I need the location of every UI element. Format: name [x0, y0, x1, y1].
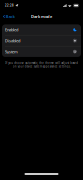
staticText: Disabled	[5, 38, 20, 43]
button[interactable]: Back	[0, 12, 17, 21]
staticText: If you choose automatic, the theme will …	[5, 61, 78, 68]
staticText: Back	[6, 14, 15, 19]
button[interactable]: Enabled	[2, 24, 81, 35]
button[interactable]: System	[2, 46, 81, 57]
button[interactable]: Disabled	[2, 35, 81, 46]
staticText: 22:28	[5, 4, 14, 7]
staticText: Dark mode	[31, 14, 52, 19]
staticText: System	[5, 49, 18, 54]
staticText: Enabled	[5, 27, 18, 32]
